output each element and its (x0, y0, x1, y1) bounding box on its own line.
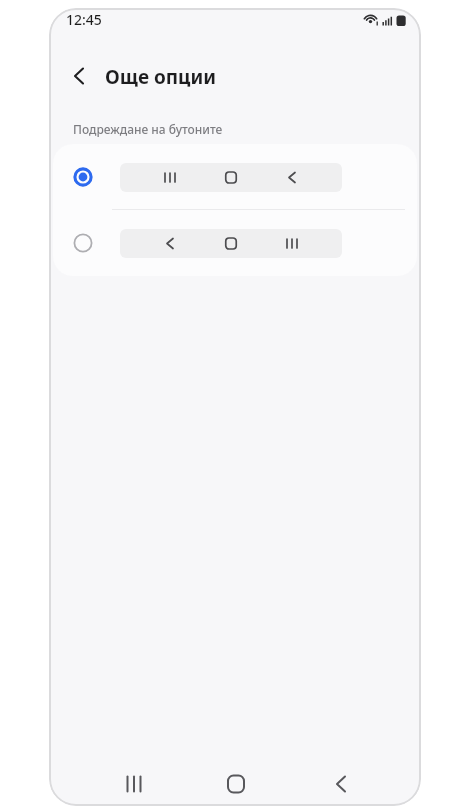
button[interactable] (64, 60, 96, 92)
button[interactable] (311, 764, 371, 804)
button[interactable] (53, 210, 417, 276)
button[interactable] (206, 764, 266, 804)
button[interactable] (53, 144, 417, 210)
staticText: Още опции (105, 64, 217, 90)
staticText: Подреждане на бутоните (73, 121, 223, 137)
button[interactable] (104, 764, 164, 804)
staticText: 12:45 (66, 10, 102, 29)
